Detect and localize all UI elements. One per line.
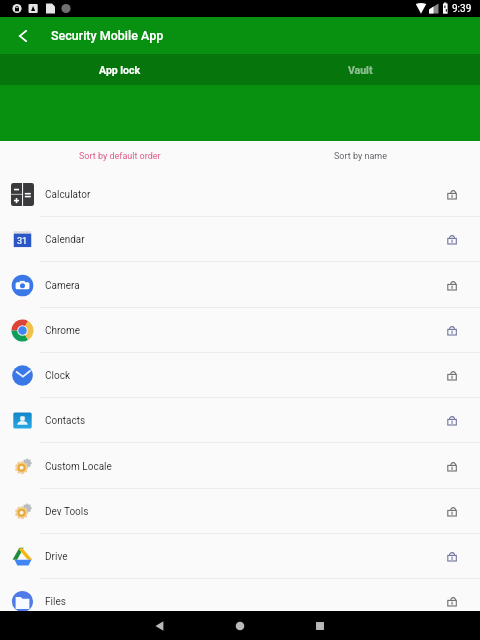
button[interactable]: Back — [140, 611, 180, 640]
button[interactable]: App lock — [0, 54, 240, 85]
button[interactable]: Sort by default order — [0, 141, 240, 172]
button[interactable]: Dev Tools — [0, 489, 480, 534]
staticText: Calculator — [45, 189, 91, 201]
button[interactable]: Locked — [437, 225, 467, 255]
button[interactable]: Files — [0, 579, 480, 624]
staticText: Camera — [45, 280, 80, 292]
button[interactable]: Locked — [437, 406, 467, 436]
button[interactable]: Drive — [0, 534, 480, 579]
button[interactable]: Contacts — [0, 398, 480, 443]
staticText: Dev Tools — [45, 506, 89, 518]
staticText: Calendar — [45, 234, 85, 246]
staticText: Chrome — [45, 325, 81, 337]
staticText: Files — [45, 596, 66, 608]
button[interactable]: Chrome — [0, 308, 480, 353]
staticText: Custom Locale — [45, 461, 112, 473]
button[interactable]: Unlocked — [437, 271, 467, 301]
button[interactable]: Recent apps — [300, 611, 340, 640]
staticText: Clock — [45, 370, 70, 382]
button[interactable]: Camera — [0, 263, 480, 308]
button[interactable]: Unlocked — [437, 452, 467, 482]
staticText: Drive — [45, 551, 68, 563]
staticText: Sort by default order — [79, 151, 161, 162]
button[interactable]: Locked — [437, 542, 467, 572]
button[interactable]: Calculator — [0, 172, 480, 217]
button[interactable]: 31 — [0, 217, 480, 262]
button[interactable]: Locked — [437, 316, 467, 346]
button[interactable]: Custom Locale — [0, 444, 480, 489]
button[interactable]: Unlocked — [437, 497, 467, 527]
button[interactable]: Vault — [240, 54, 480, 85]
staticText: 31 — [17, 236, 28, 247]
staticText: App lock — [99, 64, 141, 76]
staticText: Vault — [348, 64, 373, 76]
button[interactable]: Unlocked — [437, 361, 467, 391]
staticText: Security Mobile App — [51, 28, 164, 43]
button[interactable]: Unlocked — [437, 587, 467, 617]
button[interactable]: Clock — [0, 353, 480, 398]
button[interactable]: Unlocked — [437, 180, 467, 210]
staticText: Sort by name — [334, 151, 387, 162]
staticText: Contacts — [45, 415, 86, 427]
button[interactable]: Navigate up — [0, 17, 44, 54]
button[interactable]: Sort by name — [240, 141, 480, 172]
staticText: 9:39 — [452, 3, 472, 15]
button[interactable]: Home — [220, 611, 260, 640]
